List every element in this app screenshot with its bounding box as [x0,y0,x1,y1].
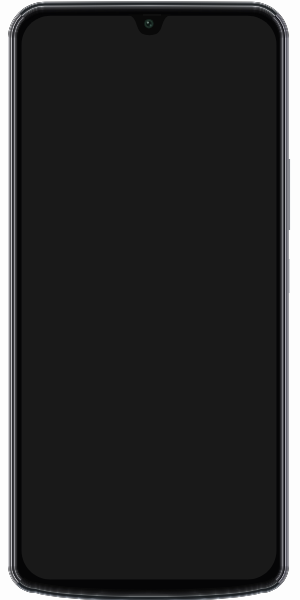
button[interactable]: Smartphone front view [0,0,300,600]
